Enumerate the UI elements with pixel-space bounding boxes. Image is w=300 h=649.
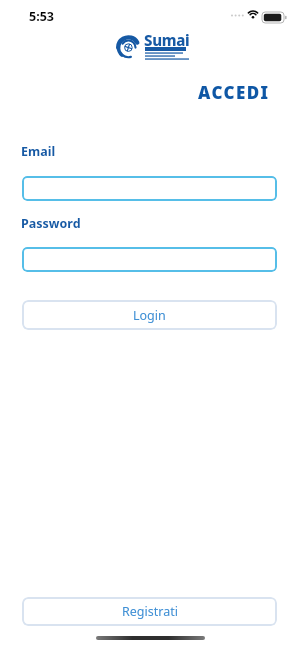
button[interactable] — [22, 247, 277, 272]
button[interactable]: Login — [22, 300, 277, 330]
staticText: 5:53 — [29, 8, 54, 25]
staticText: Registrati — [122, 603, 178, 620]
staticText: Login — [133, 307, 166, 324]
button[interactable]: Registrati — [22, 597, 277, 626]
button[interactable] — [22, 176, 277, 201]
button[interactable]: ACCEDI — [198, 81, 270, 104]
staticText: Password — [21, 215, 81, 232]
staticText: Email — [21, 143, 56, 160]
staticText: Sumai — [144, 30, 190, 50]
